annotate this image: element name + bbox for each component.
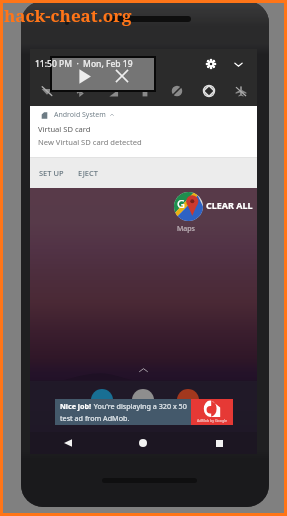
staticText: CLEAR ALL: [206, 199, 253, 211]
staticText: Virtual SD card: [38, 124, 91, 134]
staticText: You're displaying a 320 x 50: [92, 401, 187, 411]
button[interactable]: Collapse quick settings: [230, 56, 246, 72]
button[interactable]: Nice job!: [55, 399, 233, 425]
button[interactable]: Maps: [174, 192, 203, 221]
button[interactable]: Bluetooth: [63, 81, 96, 101]
button[interactable]: Recent apps: [209, 433, 229, 453]
staticText: 11:50 PM · Mon, Feb 19: [35, 58, 133, 70]
staticText: EJECT: [78, 168, 98, 178]
button[interactable]: SET UP: [30, 161, 71, 185]
button[interactable]: Do not disturb: [161, 81, 193, 101]
button[interactable]: Phone: [91, 389, 113, 411]
button[interactable]: Home: [133, 433, 153, 453]
button[interactable]: Camera: [177, 389, 199, 411]
button[interactable]: Settings: [203, 56, 219, 72]
staticText: hack-cheat.org: [4, 4, 132, 27]
staticText: AdMob by Google: [197, 418, 228, 423]
staticText: Maps: [177, 224, 195, 234]
staticText: New Virtual SD card detected: [38, 137, 142, 147]
button[interactable]: EJECT: [71, 161, 105, 185]
button[interactable]: Wi-Fi off: [30, 81, 63, 101]
staticText: SET UP: [39, 168, 64, 178]
staticText: G: [177, 196, 185, 211]
button[interactable]: Back: [58, 433, 78, 453]
button[interactable]: Airplane mode: [225, 81, 257, 101]
button[interactable]: Auto rotate: [193, 81, 225, 101]
staticText: test ad from AdMob.: [60, 413, 130, 423]
button[interactable]: CLEAR ALL: [206, 194, 253, 216]
button[interactable]: Battery saver: [129, 81, 161, 101]
button[interactable]: Mobile network LTE: [96, 81, 129, 101]
staticText: Android System: [54, 110, 106, 120]
staticText: Nice job!: [60, 401, 92, 411]
button[interactable]: Messages: [132, 389, 154, 411]
